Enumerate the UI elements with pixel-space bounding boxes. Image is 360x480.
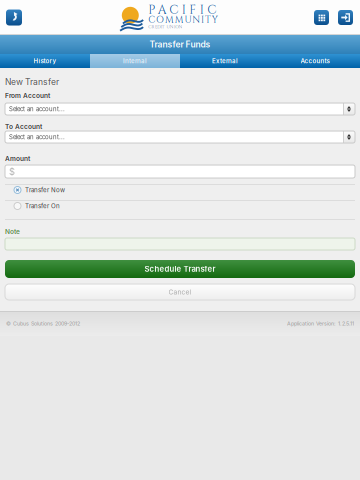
staticText: COMMUNITY	[148, 14, 218, 26]
staticText: External	[212, 57, 238, 65]
staticText: From Account	[5, 91, 50, 99]
staticText: Transfer On	[25, 202, 60, 210]
button[interactable]: Schedule Transfer	[5, 260, 355, 278]
staticText: History	[33, 57, 56, 65]
staticText: © Cubus Solutions 2009-2012	[6, 320, 80, 327]
button[interactable]: Log out	[338, 10, 353, 25]
staticText: Amount	[5, 154, 30, 162]
staticText: To Account	[5, 122, 42, 130]
staticText: Note	[5, 227, 20, 235]
button[interactable]: Accounts	[270, 54, 360, 68]
staticText: Select an account...	[9, 133, 65, 141]
button[interactable]: Select an account...	[5, 131, 355, 143]
staticText: Internal	[123, 57, 147, 65]
staticText: $	[9, 166, 15, 177]
button[interactable]: History	[0, 54, 90, 68]
button[interactable]: Back	[0, 9, 22, 25]
button[interactable]: Internal	[90, 54, 180, 68]
staticText: Schedule Transfer	[144, 264, 215, 274]
staticText: Application Version: 1.2.5.11	[287, 320, 354, 327]
staticText: Cancel	[168, 288, 191, 296]
button[interactable]: Menu	[314, 10, 329, 25]
button[interactable]: Cancel	[5, 284, 355, 300]
button[interactable]: Select an account...	[5, 103, 355, 115]
staticText: Select an account...	[9, 105, 65, 113]
button[interactable]: Transfer Now	[5, 185, 355, 195]
staticText: Transfer Funds	[149, 39, 210, 50]
staticText: PACIFIC	[148, 2, 216, 18]
staticText: New Transfer	[5, 77, 59, 87]
staticText: CREDIT UNION	[148, 24, 183, 30]
staticText: Transfer Now	[25, 186, 65, 194]
button[interactable]: Transfer On	[5, 201, 355, 211]
staticText: Accounts	[300, 57, 329, 65]
button[interactable]: External	[180, 54, 270, 68]
